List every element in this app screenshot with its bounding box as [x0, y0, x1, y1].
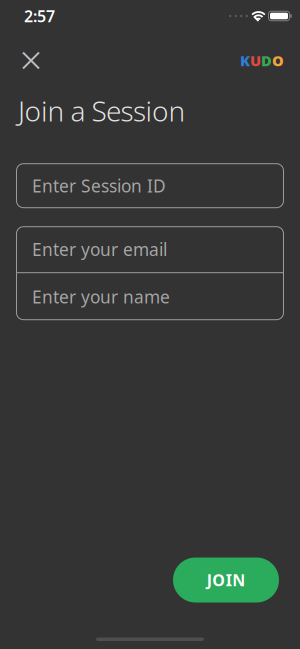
staticText: Join a Session	[18, 92, 185, 129]
button[interactable]: Enter Session ID	[16, 163, 284, 208]
staticText: K	[240, 51, 250, 70]
staticText: D	[261, 51, 272, 70]
staticText: Enter Session ID	[32, 174, 166, 197]
button[interactable]: Enter your name	[16, 273, 284, 320]
staticText: Enter your name	[32, 285, 170, 308]
button[interactable]: Enter your email	[16, 226, 284, 272]
staticText: 2:57	[24, 5, 55, 27]
staticText: Enter your email	[32, 238, 167, 261]
button[interactable]: Close	[15, 44, 47, 76]
button[interactable]: JOIN	[173, 557, 279, 602]
button[interactable]: KUDO	[240, 51, 284, 70]
staticText: JOIN	[207, 569, 245, 591]
staticText: O	[272, 51, 284, 70]
staticText: U	[250, 51, 261, 70]
